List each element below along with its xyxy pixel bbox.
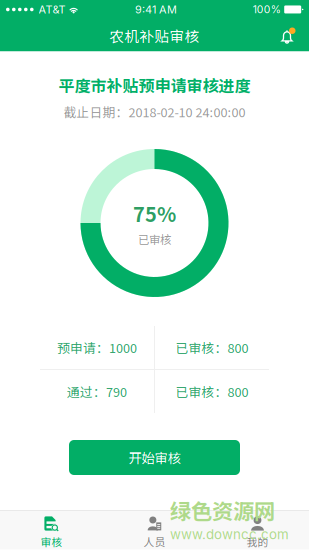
staticText: 截止日期：2018-02-10 24:00:00 [63, 103, 245, 121]
staticText: 预申请：1000 [57, 338, 137, 357]
staticText: 绿色资源网 [170, 494, 275, 525]
staticText: www.downcc.com [170, 526, 289, 542]
button[interactable]: 开始审核 [69, 440, 240, 475]
button[interactable]: 审核 [0, 511, 103, 550]
staticText: 开始审核 [128, 448, 180, 467]
staticText: 平度市补贴预申请审核进度 [58, 73, 250, 97]
button[interactable]: 我的 [206, 511, 309, 550]
staticText: AT&T [38, 3, 65, 16]
staticText: 人员 [143, 534, 165, 549]
button[interactable]: Notifications [275, 21, 301, 49]
button[interactable]: 人员 [103, 511, 206, 550]
staticText: 9:41 AM [135, 3, 177, 16]
staticText: 通过：790 [67, 382, 127, 401]
staticText: 已审核 [138, 231, 171, 247]
staticText: 100% [253, 3, 281, 16]
staticText: 我的 [246, 534, 268, 549]
staticText: 审核 [40, 534, 62, 549]
staticText: 75% [133, 199, 176, 228]
staticText: 已审核：800 [175, 382, 248, 401]
staticText: 农机补贴审核 [109, 25, 199, 46]
staticText: 已审核：800 [175, 338, 248, 357]
